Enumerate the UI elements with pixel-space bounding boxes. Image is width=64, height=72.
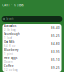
staticText: CART · 6 ITEMS bbox=[2, 3, 23, 7]
staticText: Avocados bbox=[4, 24, 16, 28]
staticText: 64 fl oz bbox=[4, 44, 15, 48]
staticText: Search bbox=[6, 17, 14, 21]
staticText: Free Eggs bbox=[4, 56, 17, 60]
staticText: $4.80 bbox=[51, 42, 60, 46]
staticText: $5.25 bbox=[51, 34, 60, 38]
staticText: $6.40 bbox=[51, 26, 60, 30]
staticText: 1 pint bbox=[4, 52, 13, 56]
staticText: Blueberry bbox=[4, 48, 18, 52]
staticText: Sourdough bbox=[4, 32, 20, 36]
staticText: 12 oz bag bbox=[4, 68, 18, 72]
staticText: Dozen bbox=[4, 60, 13, 64]
staticText: $3.95 bbox=[51, 50, 60, 54]
staticText: $9.25 bbox=[51, 66, 60, 70]
staticText: Oat Milk bbox=[4, 40, 14, 44]
staticText: 1 loaf bbox=[4, 36, 12, 40]
staticText: 2 lb bag bbox=[4, 28, 16, 32]
staticText: Coffee bbox=[4, 64, 14, 68]
staticText: $5.10 bbox=[51, 58, 60, 62]
